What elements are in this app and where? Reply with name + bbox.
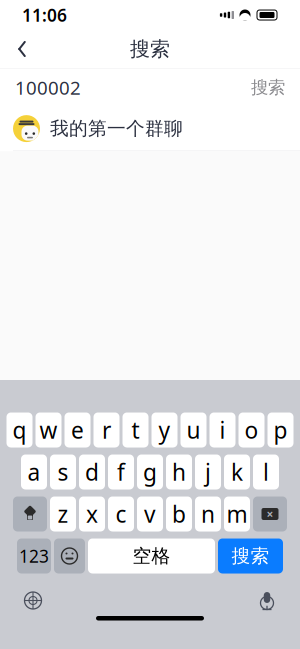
button[interactable]: 空格 xyxy=(88,538,215,573)
button[interactable]: 表情 xyxy=(54,538,85,573)
staticText: f xyxy=(117,457,125,487)
button[interactable]: u xyxy=(180,412,206,447)
staticText: w xyxy=(39,415,57,445)
button[interactable]: 我的第一个群聊 xyxy=(0,107,300,151)
button[interactable]: n xyxy=(195,496,221,531)
staticText: v xyxy=(144,499,156,529)
staticText: n xyxy=(201,499,215,529)
staticText: q xyxy=(12,415,26,445)
staticText: b xyxy=(172,499,186,529)
staticText: 搜索 xyxy=(130,37,170,61)
staticText: g xyxy=(143,457,157,487)
staticText: i xyxy=(219,415,225,445)
button[interactable]: h xyxy=(166,454,192,489)
button[interactable]: r xyxy=(93,412,119,447)
button[interactable]: v xyxy=(137,496,163,531)
staticText: l xyxy=(263,457,269,487)
button[interactable]: q xyxy=(6,412,32,447)
button[interactable]: b xyxy=(166,496,192,531)
staticText: 100002 xyxy=(15,75,81,100)
button[interactable]: 123 xyxy=(17,538,51,573)
button[interactable]: 返回 xyxy=(0,30,44,68)
button[interactable]: o xyxy=(238,412,264,447)
staticText: k xyxy=(231,457,243,487)
button[interactable]: y xyxy=(151,412,177,447)
staticText: e xyxy=(71,415,84,445)
button[interactable]: f xyxy=(108,454,134,489)
button[interactable]: j xyxy=(195,454,221,489)
button[interactable]: p xyxy=(267,412,293,447)
staticText: m xyxy=(226,499,247,529)
staticText: r xyxy=(102,415,111,445)
button[interactable]: g xyxy=(137,454,163,489)
button[interactable]: 语音输入 xyxy=(247,583,287,617)
button[interactable]: a xyxy=(21,454,47,489)
staticText: o xyxy=(244,415,258,445)
staticText: 11:06 xyxy=(22,3,67,26)
staticText: x xyxy=(86,499,98,529)
button[interactable]: Shift xyxy=(13,496,47,531)
button[interactable]: t xyxy=(122,412,148,447)
button[interactable]: c xyxy=(108,496,134,531)
staticText: 我的第一个群聊 xyxy=(50,117,183,140)
staticText: y xyxy=(158,415,170,445)
staticText: 123 xyxy=(19,544,49,567)
staticText: s xyxy=(57,457,68,487)
button[interactable]: s xyxy=(50,454,76,489)
button[interactable]: 100002 xyxy=(0,69,300,107)
staticText: j xyxy=(205,457,211,487)
button[interactable]: e xyxy=(64,412,90,447)
button[interactable]: w xyxy=(35,412,61,447)
staticText: h xyxy=(172,457,186,487)
button[interactable]: d xyxy=(79,454,105,489)
staticText: × xyxy=(266,506,273,522)
staticText: a xyxy=(27,457,40,487)
button[interactable]: z xyxy=(50,496,76,531)
staticText: 搜索 xyxy=(231,544,269,567)
staticText: u xyxy=(186,415,200,445)
button[interactable]: 搜索 xyxy=(218,538,283,573)
staticText: t xyxy=(131,415,139,445)
button[interactable]: k xyxy=(224,454,250,489)
button[interactable]: 删除 xyxy=(253,496,287,531)
button[interactable]: m xyxy=(224,496,250,531)
staticText: 搜索 xyxy=(251,77,285,98)
button[interactable]: x xyxy=(79,496,105,531)
button[interactable]: 切换键盘 xyxy=(13,583,53,617)
staticText: p xyxy=(273,415,287,445)
button[interactable]: i xyxy=(209,412,235,447)
button[interactable]: l xyxy=(253,454,279,489)
staticText: d xyxy=(85,457,99,487)
staticText: z xyxy=(57,499,68,529)
staticText: 空格 xyxy=(132,544,170,567)
staticText: c xyxy=(115,499,126,529)
